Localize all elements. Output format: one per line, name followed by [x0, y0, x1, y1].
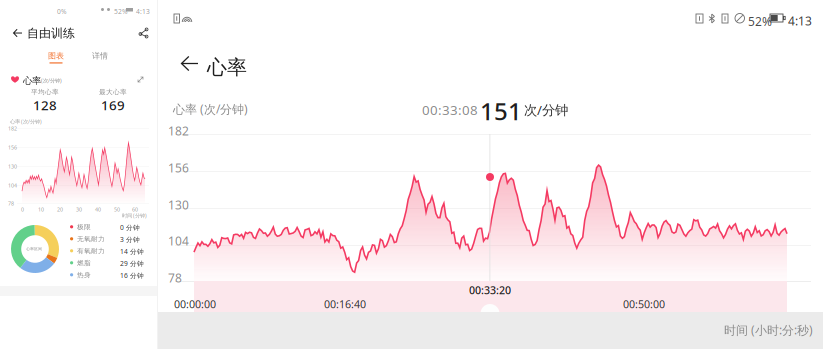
- staticText: 4:13: [788, 13, 812, 29]
- staticText: 104: [8, 182, 17, 189]
- staticText: 104: [168, 233, 189, 249]
- staticText: 00:16:40: [324, 297, 366, 311]
- button[interactable]: Back: [9, 25, 26, 41]
- staticText: 平均心率: [31, 88, 59, 96]
- staticText: 00:33:20: [469, 283, 511, 297]
- staticText: 3 分钟: [120, 235, 140, 244]
- staticText: 00:00:00: [174, 297, 216, 311]
- staticText: 50: [114, 206, 120, 213]
- button[interactable]: Back: [175, 50, 204, 77]
- button[interactable]: 详情: [92, 51, 108, 61]
- staticText: 图表: [48, 51, 64, 61]
- staticText: 无氧耐力: [77, 235, 105, 243]
- staticText: 00:50:00: [623, 297, 665, 311]
- staticText: 0%: [57, 7, 67, 16]
- staticText: 16 分钟: [120, 271, 144, 280]
- staticText: 130: [8, 163, 17, 170]
- staticText: 156: [8, 144, 17, 151]
- staticText: 最大心率: [99, 88, 127, 96]
- staticText: 时间 (小时:分:秒): [724, 322, 813, 338]
- staticText: 燃脂: [77, 259, 91, 267]
- staticText: 60: [132, 206, 138, 213]
- staticText: 4:13: [136, 7, 150, 16]
- staticText: 10: [38, 206, 44, 213]
- staticText: 156: [168, 160, 189, 176]
- staticText: 182: [168, 123, 189, 139]
- staticText: 14 分钟: [120, 247, 144, 256]
- staticText: 心率区间: [26, 246, 42, 251]
- staticText: 有氧耐力: [77, 247, 105, 255]
- staticText: 169: [101, 96, 125, 114]
- staticText: 52%: [748, 13, 772, 29]
- staticText: 78: [8, 200, 14, 207]
- staticText: 182: [8, 125, 17, 132]
- staticText: (次/分钟): [41, 77, 62, 84]
- button[interactable]: Expand: [135, 74, 146, 85]
- staticText: 时间 (分钟): [122, 212, 147, 219]
- staticText: 130: [168, 197, 189, 213]
- staticText: 40: [95, 206, 101, 213]
- staticText: 自由训练: [27, 26, 75, 41]
- staticText: 151: [480, 95, 522, 127]
- button[interactable]: 图表: [48, 51, 64, 63]
- staticText: 心率 (次/分钟): [173, 101, 248, 117]
- staticText: 30: [76, 206, 82, 213]
- staticText: 29 分钟: [120, 259, 144, 268]
- staticText: 详情: [92, 51, 108, 61]
- staticText: 次/分钟: [524, 101, 568, 119]
- staticText: 0: [21, 206, 24, 213]
- staticText: 心率: [207, 55, 247, 80]
- staticText: 52%: [114, 7, 128, 16]
- staticText: 20: [57, 206, 63, 213]
- button[interactable]: Share: [136, 25, 151, 41]
- staticText: 热身: [77, 271, 91, 279]
- staticText: 128: [33, 96, 57, 114]
- staticText: 78: [168, 270, 182, 286]
- staticText: 心率 (次/分钟): [10, 118, 42, 125]
- staticText: 0 分钟: [120, 223, 140, 232]
- staticText: 00:33:08: [422, 101, 478, 119]
- staticText: 心率: [23, 75, 41, 86]
- staticText: 极限: [77, 223, 91, 231]
